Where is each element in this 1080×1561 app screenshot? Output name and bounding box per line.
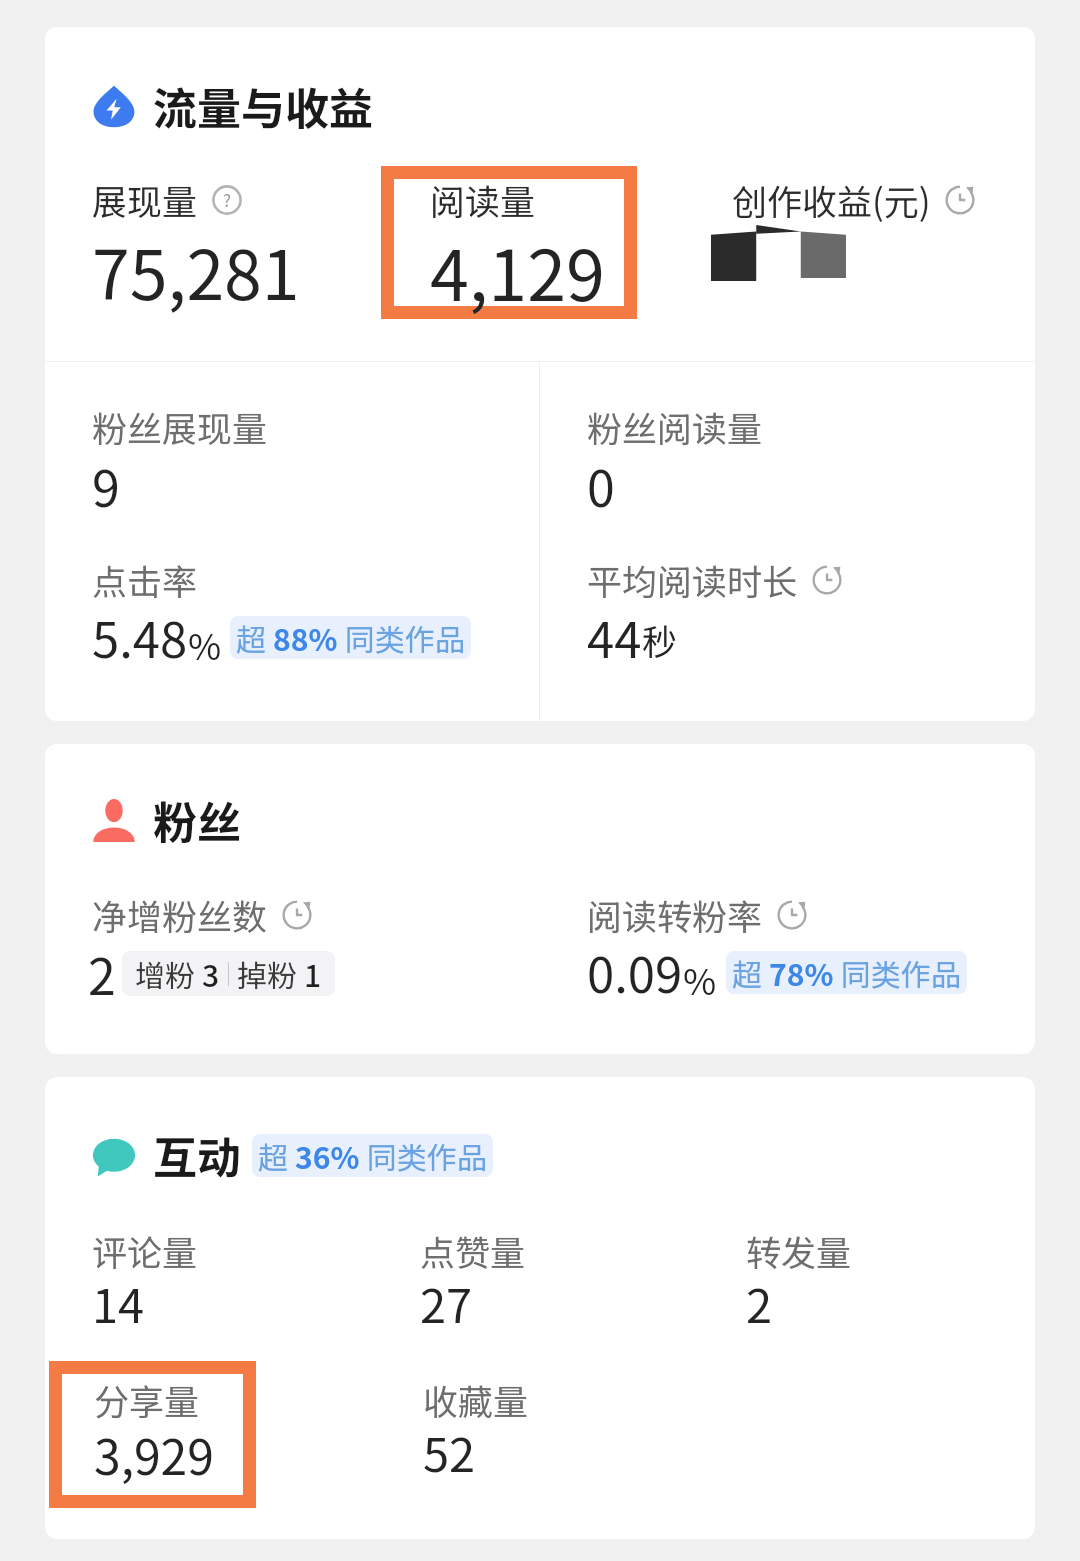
staticText: 净增粉丝数 <box>92 889 268 940</box>
staticText: 14 <box>92 1268 145 1336</box>
button[interactable]: 粉丝 <box>92 788 241 852</box>
staticText: 超 <box>732 951 769 994</box>
staticText: 阅读转粉率 <box>587 889 763 940</box>
staticText: 52 <box>423 1417 476 1485</box>
staticText: 超 <box>236 616 273 659</box>
staticText: 9 <box>92 449 120 521</box>
staticText: 同类作品 <box>360 1134 487 1177</box>
staticText: ? <box>223 187 232 212</box>
staticText: 粉丝展现量 <box>92 401 268 452</box>
staticText: 2 <box>88 937 116 1009</box>
staticText: 36% <box>295 1134 360 1177</box>
staticText: 78% <box>769 951 834 994</box>
button[interactable]: 超 <box>726 951 967 994</box>
staticText: 同类作品 <box>338 616 465 659</box>
staticText: 创作收益(元) <box>732 174 931 225</box>
staticText: 2 <box>746 1268 773 1336</box>
button[interactable]: 互动 <box>92 1123 493 1187</box>
staticText: 互动 <box>153 1123 241 1187</box>
staticText: 27 <box>420 1268 473 1336</box>
staticText: 分享量 <box>94 1374 200 1425</box>
staticText: 掉粉 <box>237 952 304 995</box>
staticText: 平均阅读时长 <box>587 554 798 605</box>
staticText: 同类作品 <box>834 951 961 994</box>
staticText: 4,129 <box>430 220 605 321</box>
staticText: 0 <box>587 449 615 521</box>
staticText: 转发量 <box>746 1225 852 1276</box>
staticText: 点赞量 <box>420 1225 526 1276</box>
staticText: 展现量 <box>92 174 198 225</box>
staticText: 增粉 <box>135 952 202 995</box>
staticText: 88% <box>273 616 338 659</box>
staticText: 收藏量 <box>423 1374 529 1425</box>
staticText: 粉丝阅读量 <box>587 401 763 452</box>
staticText: 点击率 <box>92 554 198 605</box>
staticText: 75,281 <box>92 221 300 319</box>
staticText: 1 <box>304 952 322 995</box>
staticText: 评论量 <box>92 1225 198 1276</box>
staticText: 秒 <box>642 614 678 665</box>
button[interactable]: 超 <box>252 1134 493 1177</box>
staticText: 3,929 <box>94 1419 214 1489</box>
staticText: 5.48 <box>92 601 188 672</box>
button[interactable]: 超 <box>230 616 471 659</box>
button[interactable]: 流量与收益 <box>92 74 373 138</box>
staticText: 0.09 <box>587 936 683 1007</box>
button[interactable]: 增粉 <box>122 951 335 996</box>
staticText: 3 <box>202 952 220 995</box>
staticText: 流量与收益 <box>153 74 373 138</box>
staticText: % <box>188 618 222 670</box>
staticText: 粉丝 <box>153 788 241 852</box>
staticText: 阅读量 <box>430 174 536 225</box>
other: 说明 <box>212 185 242 215</box>
staticText: % <box>683 953 717 1005</box>
staticText: 44 <box>587 601 642 672</box>
staticText: 超 <box>258 1134 295 1177</box>
